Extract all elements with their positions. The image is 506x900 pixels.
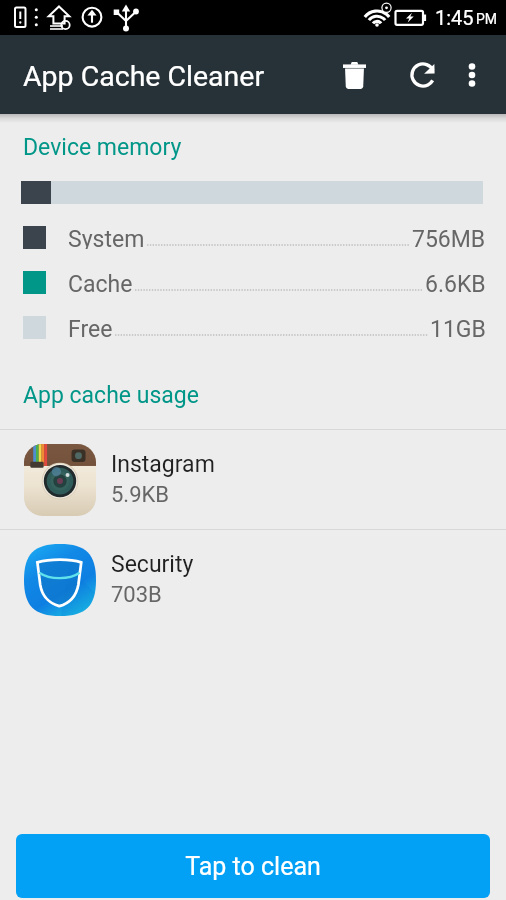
staticText: Tap to clean <box>185 852 321 881</box>
staticText: Device memory <box>23 134 182 161</box>
staticText: System <box>68 226 145 249</box>
staticText: 5.9KB <box>111 482 170 508</box>
button[interactable]: Refresh <box>395 49 447 101</box>
staticText: Cache <box>68 271 133 294</box>
staticText: 1:45 <box>435 6 474 29</box>
button[interactable]: Tap to clean <box>16 834 490 898</box>
button[interactable]: Delete cache <box>328 49 380 101</box>
staticText: Free <box>68 316 113 339</box>
staticText: App Cache Cleaner <box>23 60 265 93</box>
button[interactable]: Instagram <box>0 430 506 529</box>
staticText: App cache usage <box>23 382 199 409</box>
button[interactable]: Security <box>0 530 506 629</box>
staticText: 6.6KB <box>425 271 486 294</box>
staticText: 756MB <box>412 226 486 249</box>
staticText: 11GB <box>430 316 486 339</box>
staticText: 703B <box>111 582 162 608</box>
button[interactable]: More options <box>448 49 496 101</box>
staticText: Security <box>111 551 194 578</box>
staticText: PM <box>476 11 498 27</box>
staticText: Instagram <box>111 451 215 478</box>
